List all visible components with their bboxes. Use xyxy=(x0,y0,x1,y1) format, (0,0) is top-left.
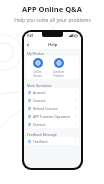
staticText: Main Questions xyxy=(27,83,52,87)
staticText: APP Online Q&A xyxy=(22,4,82,14)
staticText: 9:41 xyxy=(27,34,34,38)
button[interactable]: Refund Courses xyxy=(26,104,79,112)
button[interactable]: Feedback xyxy=(26,137,79,145)
button[interactable]: Courses xyxy=(26,96,79,104)
staticText: APP Function Operation xyxy=(33,114,70,118)
staticText: Account xyxy=(33,90,46,94)
staticText: Feedback xyxy=(33,139,48,143)
button[interactable]: Account xyxy=(26,88,79,96)
staticText: Help you solve all your problems xyxy=(14,17,91,24)
staticText: Courses xyxy=(33,98,46,102)
button[interactable]: Common Problem xyxy=(51,58,66,78)
staticText: Online Service xyxy=(30,70,45,78)
button[interactable]: APP Function Operation xyxy=(26,112,79,120)
staticText: My Worker xyxy=(27,51,45,55)
staticText: Common Problem xyxy=(51,70,66,78)
staticText: Help xyxy=(48,42,58,48)
staticText: Services xyxy=(33,122,46,126)
button[interactable]: Online Service xyxy=(30,58,45,78)
button[interactable]: Back xyxy=(24,41,32,49)
staticText: Refund Courses xyxy=(33,106,58,110)
button[interactable]: Services xyxy=(26,120,79,128)
staticText: Feedback Message xyxy=(27,132,57,136)
